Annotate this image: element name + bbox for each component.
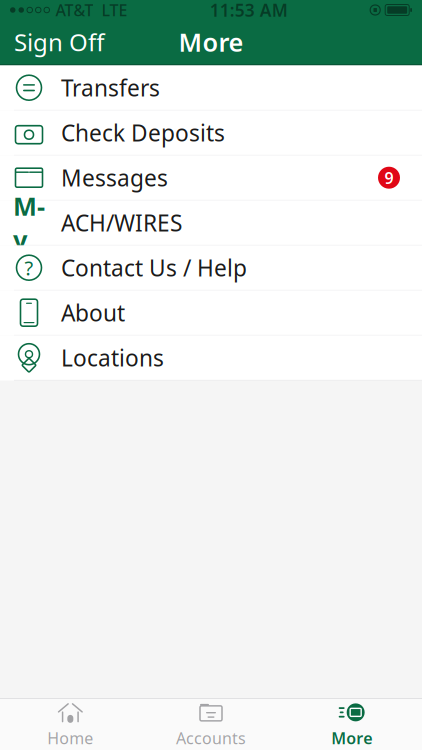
- staticText: More: [331, 727, 372, 749]
- button[interactable]: Messages: [0, 155, 422, 200]
- staticText: More: [178, 25, 243, 59]
- button[interactable]: ?: [0, 245, 422, 290]
- staticText: 11:53 AM: [210, 0, 288, 21]
- button[interactable]: Transfers: [0, 65, 422, 110]
- staticText: Transfers: [61, 73, 160, 103]
- button[interactable]: About: [0, 290, 422, 335]
- staticText: Locations: [61, 343, 164, 373]
- staticText: 9: [384, 167, 393, 188]
- button[interactable]: Locations: [0, 335, 422, 380]
- button[interactable]: Sign Off: [0, 17, 119, 67]
- button[interactable]: Accounts: [141, 695, 281, 750]
- staticText: AT&T: [55, 0, 93, 21]
- staticText: Contact Us / Help: [61, 253, 247, 283]
- button[interactable]: More: [281, 695, 422, 750]
- staticText: About: [61, 298, 125, 328]
- staticText: My: [13, 189, 45, 256]
- button[interactable]: Check Deposits: [0, 110, 422, 155]
- staticText: ACH/WIRES: [61, 208, 182, 238]
- button[interactable]: My: [0, 200, 422, 245]
- staticText: LTE: [101, 0, 127, 21]
- button[interactable]: Home: [0, 695, 141, 750]
- staticText: Home: [47, 727, 93, 749]
- staticText: Messages: [61, 163, 168, 193]
- staticText: ?: [24, 254, 33, 281]
- staticText: Sign Off: [14, 26, 105, 58]
- staticText: Check Deposits: [61, 118, 225, 148]
- staticText: Accounts: [176, 727, 246, 749]
